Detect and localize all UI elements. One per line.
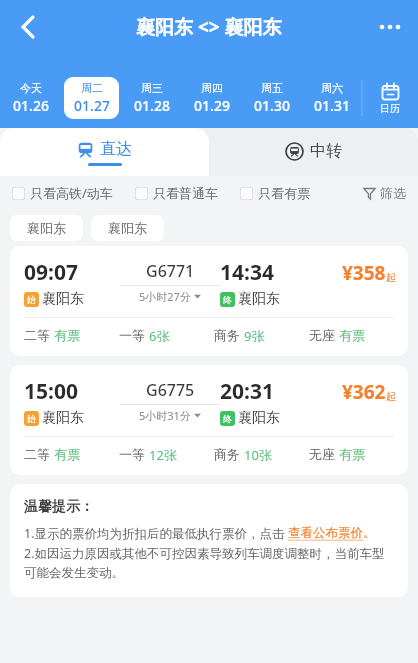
button[interactable]: 筛选 (361, 181, 408, 205)
button[interactable]: 中转 (209, 128, 418, 176)
staticText: 无座 (309, 446, 335, 462)
staticText: 一等 (119, 446, 145, 462)
staticText: G6775 (146, 379, 195, 401)
button[interactable]: Calendar (362, 76, 418, 120)
button[interactable]: 周六 (305, 77, 359, 119)
staticText: 终 (223, 294, 232, 305)
button[interactable]: 09:07 (10, 246, 408, 356)
staticText: 01.28 (134, 96, 170, 115)
button[interactable]: 15:00 (10, 365, 408, 475)
staticText: 二等 (24, 327, 50, 343)
staticText: 筛选 (380, 185, 406, 201)
staticText: 中转 (310, 141, 342, 161)
button[interactable]: More options (370, 7, 410, 47)
staticText: 起 (386, 390, 396, 403)
staticText: 周二 (81, 81, 103, 95)
staticText: 无座 (309, 327, 335, 343)
staticText: 20:31 (220, 377, 274, 406)
staticText: 襄阳东 (42, 409, 84, 427)
staticText: 一等 (119, 327, 145, 343)
staticText: G6771 (146, 260, 195, 282)
staticText: 周四 (201, 81, 223, 95)
button[interactable]: 周二 (64, 77, 119, 119)
staticText: 商务 (214, 446, 240, 462)
staticText: 9张 (244, 327, 265, 345)
button[interactable]: 周四 (185, 77, 239, 119)
staticText: 09:07 (24, 258, 78, 287)
button[interactable]: 周三 (125, 77, 179, 119)
staticText: 5小时27分 (139, 289, 191, 304)
staticText: 只看有票 (258, 185, 310, 201)
staticText: 15:00 (24, 377, 78, 406)
button[interactable]: 周五 (245, 77, 299, 119)
staticText: 周六 (321, 81, 343, 95)
button[interactable]: 今天 (3, 77, 58, 119)
staticText: 01.27 (74, 96, 110, 115)
staticText: 直达 (100, 139, 132, 159)
staticText: 温馨提示： (24, 498, 94, 516)
staticText: 周三 (141, 81, 163, 95)
staticText: 始 (27, 294, 36, 305)
staticText: 01.31 (314, 96, 350, 115)
staticText: 6张 (149, 327, 170, 345)
staticText: 2.如因运力原因或其他不可控因素导致列车调度调整时，当前车型可能会发生变动。 (24, 545, 396, 581)
button[interactable]: 只看高铁/动车 (12, 180, 113, 206)
button[interactable]: 襄阳东 (10, 215, 83, 241)
staticText: 襄阳东 (108, 220, 147, 236)
button[interactable]: 直达 (0, 128, 209, 176)
staticText: 5小时31分 (139, 408, 191, 423)
staticText: 01.26 (13, 96, 49, 115)
staticText: 01.30 (254, 96, 290, 115)
button[interactable]: 襄阳东 (91, 215, 164, 241)
staticText: 商务 (214, 327, 240, 343)
staticText: 今天 (20, 81, 42, 95)
staticText: 襄阳东 (27, 220, 66, 236)
staticText: 襄阳东 (238, 290, 280, 308)
button[interactable]: 只看有票 (240, 181, 310, 205)
staticText: ¥362 (342, 379, 386, 405)
staticText: 周五 (261, 81, 283, 95)
staticText: 终 (223, 413, 232, 424)
staticText: 只看高铁/动车 (30, 184, 113, 202)
staticText: 襄阳东 <> 襄阳东 (136, 14, 282, 40)
staticText: 01.29 (194, 96, 230, 115)
staticText: 有票 (339, 327, 365, 343)
staticText: 有票 (54, 446, 80, 462)
staticText: 二等 (24, 446, 50, 462)
staticText: 襄阳东 (238, 409, 280, 427)
staticText: 始 (27, 413, 36, 424)
button[interactable]: Back (6, 5, 50, 49)
staticText: 有票 (339, 446, 365, 462)
staticText: ¥358 (342, 260, 386, 286)
staticText: 1.显示的票价均为折扣后的最低执行票价，点击 (24, 525, 288, 542)
button[interactable]: 只看普通车 (135, 181, 218, 205)
button[interactable]: 查看公布票价 (288, 525, 363, 541)
staticText: 有票 (54, 327, 80, 343)
staticText: 12张 (149, 446, 177, 464)
staticText: 10张 (244, 446, 272, 464)
staticText: 只看普通车 (153, 185, 218, 201)
staticText: 襄阳东 (42, 290, 84, 308)
staticText: 14:34 (220, 258, 274, 287)
staticText: 起 (386, 271, 396, 284)
staticText: 日历 (380, 102, 400, 115)
staticText: 。 (363, 525, 376, 541)
